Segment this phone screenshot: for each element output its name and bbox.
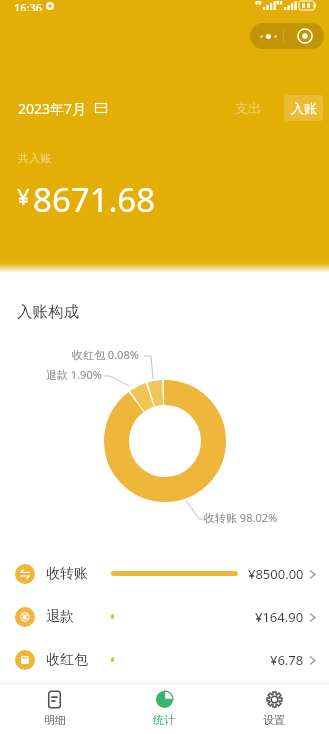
staticText: 明细 — [44, 713, 66, 727]
staticText: 收红包 — [46, 651, 88, 669]
button[interactable]: 2023年7月 — [18, 95, 107, 121]
button[interactable]: 收红包 — [0, 638, 329, 681]
button[interactable]: 收转账 — [0, 552, 329, 595]
staticText: 入账 — [291, 100, 317, 116]
staticText: 支出 — [235, 100, 261, 116]
staticText: 共入账 — [18, 151, 51, 165]
staticText: 统计 — [153, 713, 175, 727]
staticText: ¥6.78 — [270, 651, 304, 669]
staticText: 8671.68 — [33, 177, 156, 222]
staticText: ¥164.90 — [255, 608, 304, 626]
staticText: 收红包 0.08% — [72, 347, 139, 362]
staticText: 收转账 — [46, 565, 88, 583]
button[interactable]: 支出 — [225, 95, 271, 121]
button[interactable]: Close mini program — [286, 23, 324, 49]
button[interactable]: 统计 — [109, 684, 219, 734]
button[interactable]: More options — [250, 23, 286, 49]
staticText: 退款 1.90% — [46, 367, 102, 382]
button[interactable]: 入账 — [284, 95, 323, 121]
staticText: 收转账 98.02% — [204, 510, 278, 525]
button[interactable]: 明细 — [0, 684, 109, 734]
button[interactable]: 设置 — [219, 684, 329, 734]
staticText: 设置 — [263, 713, 285, 727]
staticText: 退款 — [46, 608, 74, 626]
staticText: ¥8500.00 — [248, 565, 304, 583]
staticText: 入账构成 — [17, 302, 79, 322]
staticText: 2023年7月 — [18, 99, 87, 118]
staticText: ¥ — [17, 181, 30, 211]
staticText: 16:36 — [14, 0, 43, 11]
button[interactable]: 退款 — [0, 595, 329, 638]
